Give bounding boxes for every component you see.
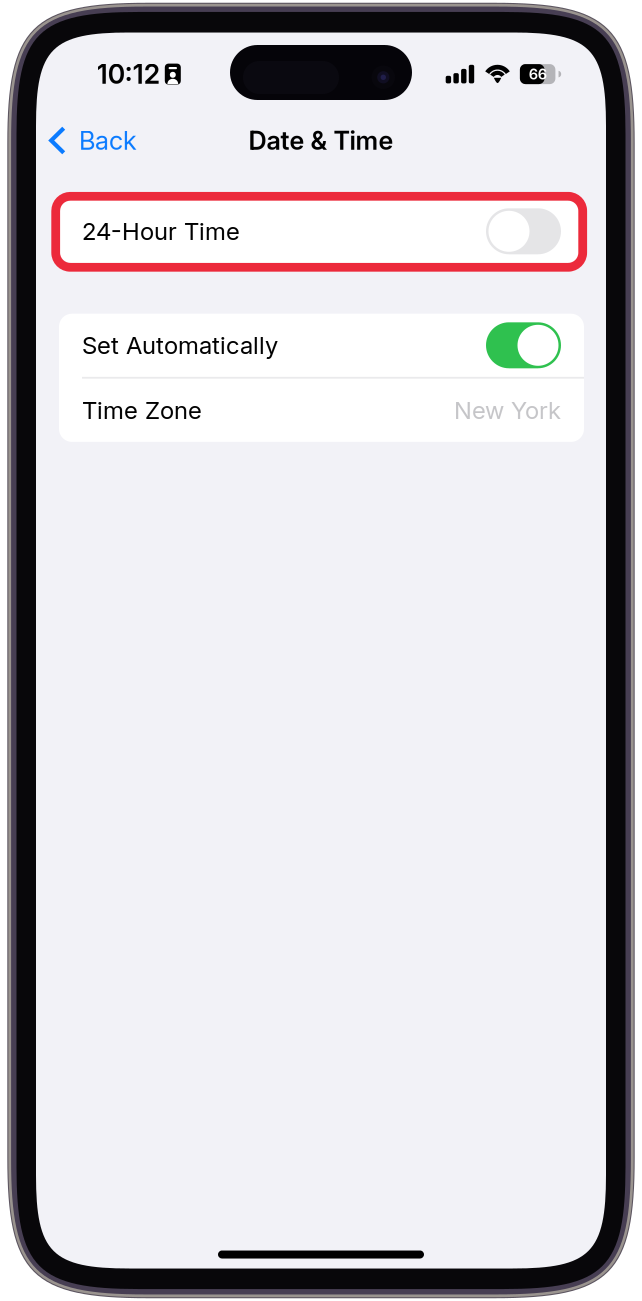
- staticText: Set Automatically: [82, 331, 278, 360]
- button[interactable]: 24-Hour Time: [59, 200, 584, 263]
- staticText: New York: [454, 396, 561, 425]
- staticText: 10:12: [97, 58, 160, 90]
- staticText: 66: [529, 65, 547, 83]
- staticText: Time Zone: [82, 396, 202, 425]
- button[interactable]: Set Automatically: [59, 314, 584, 377]
- staticText: Back: [79, 125, 137, 156]
- staticText: 24-Hour Time: [82, 217, 240, 246]
- button[interactable]: Back: [36, 116, 150, 165]
- button[interactable]: Time Zone: [59, 379, 584, 442]
- staticText: Date & Time: [248, 125, 393, 156]
